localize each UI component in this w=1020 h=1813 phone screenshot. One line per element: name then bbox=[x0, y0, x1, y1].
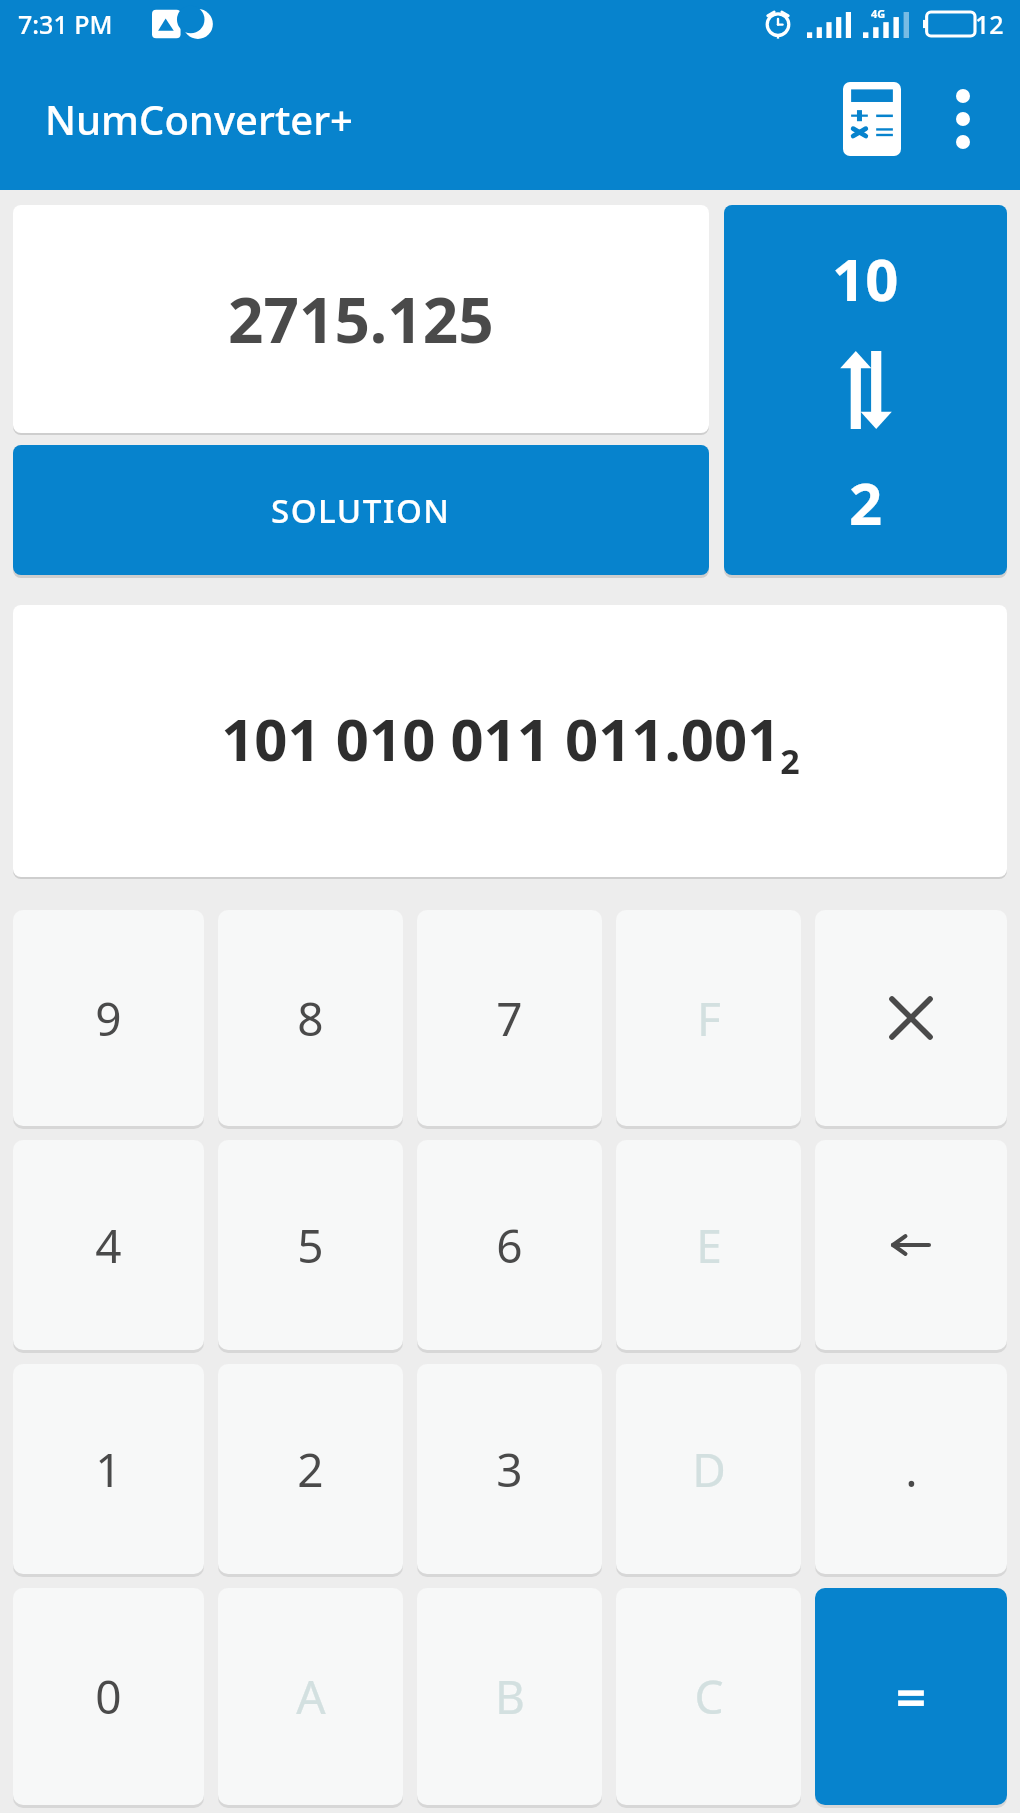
button[interactable]: 8 bbox=[218, 910, 403, 1126]
staticText: 8 bbox=[297, 987, 324, 1050]
button[interactable]: 4 bbox=[13, 1140, 204, 1350]
button[interactable]: 9 bbox=[13, 910, 204, 1126]
staticText: 0 bbox=[95, 1665, 122, 1728]
button[interactable]: 5 bbox=[218, 1140, 403, 1350]
staticText: 2 bbox=[297, 1438, 324, 1501]
staticText: F bbox=[697, 987, 721, 1050]
staticText: . bbox=[905, 1438, 918, 1501]
staticText: 5 bbox=[297, 1214, 324, 1277]
staticText: C bbox=[694, 1665, 724, 1728]
button[interactable]: A bbox=[218, 1588, 403, 1805]
staticText: NumConverter+ bbox=[45, 92, 353, 146]
button[interactable]: 2 bbox=[218, 1364, 403, 1574]
button[interactable]: D bbox=[616, 1364, 801, 1574]
button[interactable]: 1 bbox=[13, 1364, 204, 1574]
staticText: 2715.125 bbox=[228, 277, 494, 361]
staticText: 7:31 PM bbox=[18, 7, 113, 41]
staticText: 10 bbox=[832, 239, 899, 318]
button[interactable]: SOLUTION bbox=[13, 445, 709, 575]
staticText: 7 bbox=[496, 987, 523, 1050]
button[interactable]: B bbox=[417, 1588, 602, 1805]
button[interactable]: 3 bbox=[417, 1364, 602, 1574]
staticText: 12 bbox=[975, 7, 1004, 41]
staticText: 101 010 011 011.0012 bbox=[221, 699, 800, 784]
button[interactable]: . bbox=[815, 1364, 1007, 1574]
staticText: 4G bbox=[871, 6, 886, 21]
button[interactable]: 2715.125 bbox=[13, 205, 709, 433]
button[interactable]: 6 bbox=[417, 1140, 602, 1350]
button[interactable]: E bbox=[616, 1140, 801, 1350]
button[interactable]: 0 bbox=[13, 1588, 204, 1805]
button[interactable]: Clear bbox=[815, 910, 1007, 1126]
staticText: 2 bbox=[849, 463, 883, 542]
button[interactable]: 7 bbox=[417, 910, 602, 1126]
staticText: B bbox=[495, 1665, 525, 1728]
staticText: 6 bbox=[496, 1214, 523, 1277]
staticText: 1 bbox=[95, 1438, 122, 1501]
staticText: 4 bbox=[95, 1214, 122, 1277]
button[interactable]: Swap bases 10 and 2 bbox=[724, 205, 1007, 575]
staticText: 9 bbox=[95, 987, 122, 1050]
button[interactable]: Calculator bbox=[824, 71, 920, 167]
button[interactable]: More options bbox=[920, 76, 1006, 162]
staticText: SOLUTION bbox=[271, 488, 451, 533]
button[interactable]: 101 010 011 011.0012 bbox=[13, 605, 1007, 877]
staticText: A bbox=[296, 1665, 326, 1728]
button[interactable]: Equals bbox=[815, 1588, 1007, 1805]
button[interactable]: Backspace bbox=[815, 1140, 1007, 1350]
staticText: 3 bbox=[496, 1438, 523, 1501]
staticText: D bbox=[692, 1438, 726, 1501]
staticText: E bbox=[696, 1214, 722, 1277]
